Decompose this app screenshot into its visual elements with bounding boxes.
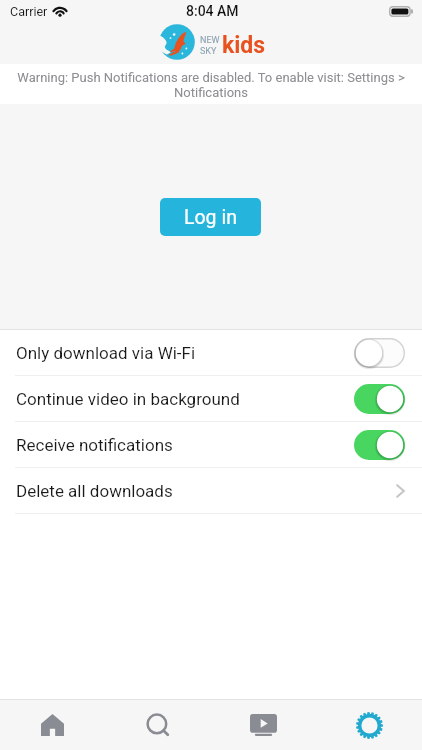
staticText: Only download via Wi-Fi	[16, 343, 196, 363]
button[interactable]: Delete all downloads	[0, 468, 422, 513]
staticText: NEW	[200, 35, 220, 46]
staticText: kids	[222, 32, 266, 59]
staticText: Warning: Push Notifications are disabled…	[16, 70, 406, 100]
staticText: Carrier	[10, 4, 48, 19]
button[interactable]: Only download via Wi-Fi	[0, 330, 422, 375]
button[interactable]: Log in	[160, 198, 261, 236]
staticText: Receive notifications	[16, 435, 173, 455]
staticText: SKY	[200, 46, 217, 57]
button[interactable]: Settings	[316, 700, 422, 750]
button[interactable]: Videos	[210, 700, 316, 750]
button[interactable]: Search	[105, 700, 210, 750]
button[interactable]: Continue video in background	[0, 376, 422, 421]
staticText: Continue video in background	[16, 389, 240, 409]
staticText: 8:04 AM	[186, 3, 239, 19]
button[interactable]: Home	[0, 700, 105, 750]
staticText: Delete all downloads	[16, 481, 173, 501]
button[interactable]: Receive notifications	[0, 422, 422, 467]
staticText: Log in	[184, 206, 237, 229]
